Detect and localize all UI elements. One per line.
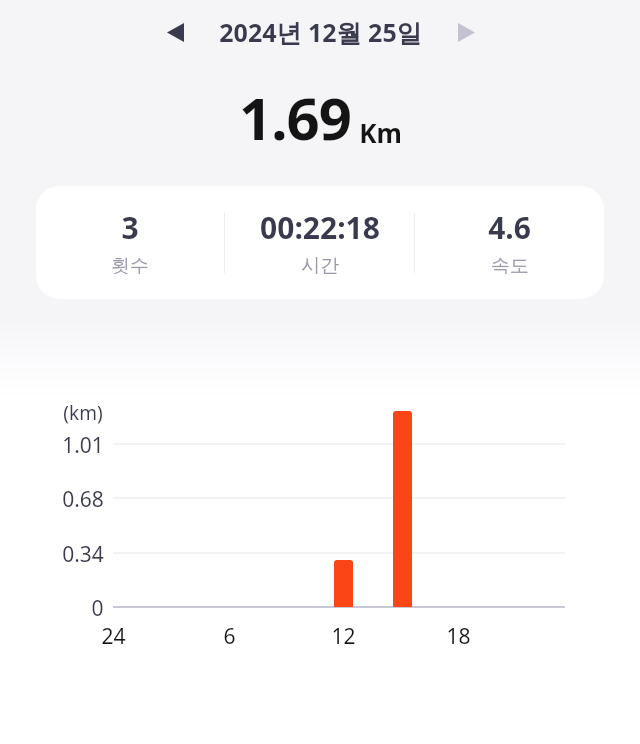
staticText: 6	[223, 622, 236, 651]
staticText: 12	[331, 622, 356, 651]
button[interactable]: Next day	[444, 10, 488, 54]
staticText: 3	[121, 207, 139, 248]
staticText: 00:22:18	[260, 207, 380, 248]
staticText: 1.01	[62, 431, 104, 460]
staticText: 속도	[491, 254, 529, 278]
staticText: 0	[91, 594, 104, 623]
staticText: 24	[101, 622, 126, 651]
staticText: 2024년 12월 25일	[219, 15, 422, 49]
staticText: 횟수	[111, 254, 149, 278]
button[interactable]: 3	[36, 186, 604, 299]
staticText: 0.34	[62, 540, 104, 569]
staticText: 시간	[301, 254, 339, 278]
staticText: 18	[446, 622, 471, 651]
button[interactable]: Previous day	[153, 10, 197, 54]
button[interactable]: 2024년 12월 25일	[219, 15, 422, 49]
staticText: 4.6	[488, 207, 531, 248]
staticText: 1.69	[239, 78, 351, 157]
staticText: 0.68	[62, 485, 104, 514]
staticText: Km	[359, 115, 402, 150]
staticText: (km)	[63, 400, 103, 426]
